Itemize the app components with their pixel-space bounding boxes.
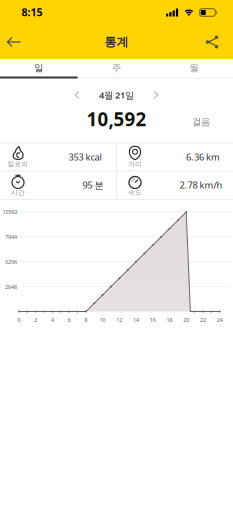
staticText: 10 — [100, 316, 106, 324]
staticText: 2.78 km/h — [179, 179, 222, 191]
staticText: 22 — [200, 316, 206, 324]
staticText: 10592 — [2, 208, 17, 216]
staticText: 95 분 — [82, 179, 103, 191]
button[interactable] — [149, 86, 163, 103]
staticText: 칼로리 — [7, 160, 28, 168]
staticText: 8 — [84, 316, 87, 324]
staticText: 시간 — [11, 188, 25, 197]
staticText: 7944 — [5, 233, 17, 241]
staticText: 353 kcal — [68, 151, 101, 163]
staticText: 16 — [150, 316, 156, 324]
button[interactable] — [70, 86, 84, 103]
staticText: 20 — [183, 316, 189, 324]
button[interactable]: 일 — [0, 58, 78, 78]
staticText: 4월 21일 — [99, 89, 134, 101]
staticText: 4 — [51, 316, 54, 324]
staticText: 속도 — [128, 188, 142, 197]
staticText: 0 — [17, 316, 20, 324]
button[interactable] — [1, 31, 26, 53]
staticText: 5296 — [5, 258, 17, 266]
staticText: 6.36 km — [186, 151, 220, 163]
button[interactable]: 월 — [155, 58, 233, 78]
staticText: 걸음 — [192, 116, 210, 128]
staticText: 18 — [166, 316, 172, 324]
staticText: 14 — [133, 316, 139, 324]
staticText: 24 — [217, 316, 223, 324]
staticText: 8:15 — [21, 5, 42, 19]
staticText: 2648 — [5, 283, 17, 291]
staticText: 통계 — [104, 35, 128, 49]
staticText: 10,592 — [86, 107, 146, 131]
button[interactable] — [200, 30, 223, 53]
staticText: 6 — [68, 316, 71, 324]
staticText: 12 — [116, 316, 122, 324]
staticText: 2 — [34, 316, 37, 324]
staticText: 주 — [112, 62, 121, 74]
staticText: 거리 — [128, 160, 142, 168]
staticText: 월 — [190, 62, 199, 74]
button[interactable]: 주 — [78, 58, 155, 78]
staticText: 일 — [34, 62, 43, 74]
